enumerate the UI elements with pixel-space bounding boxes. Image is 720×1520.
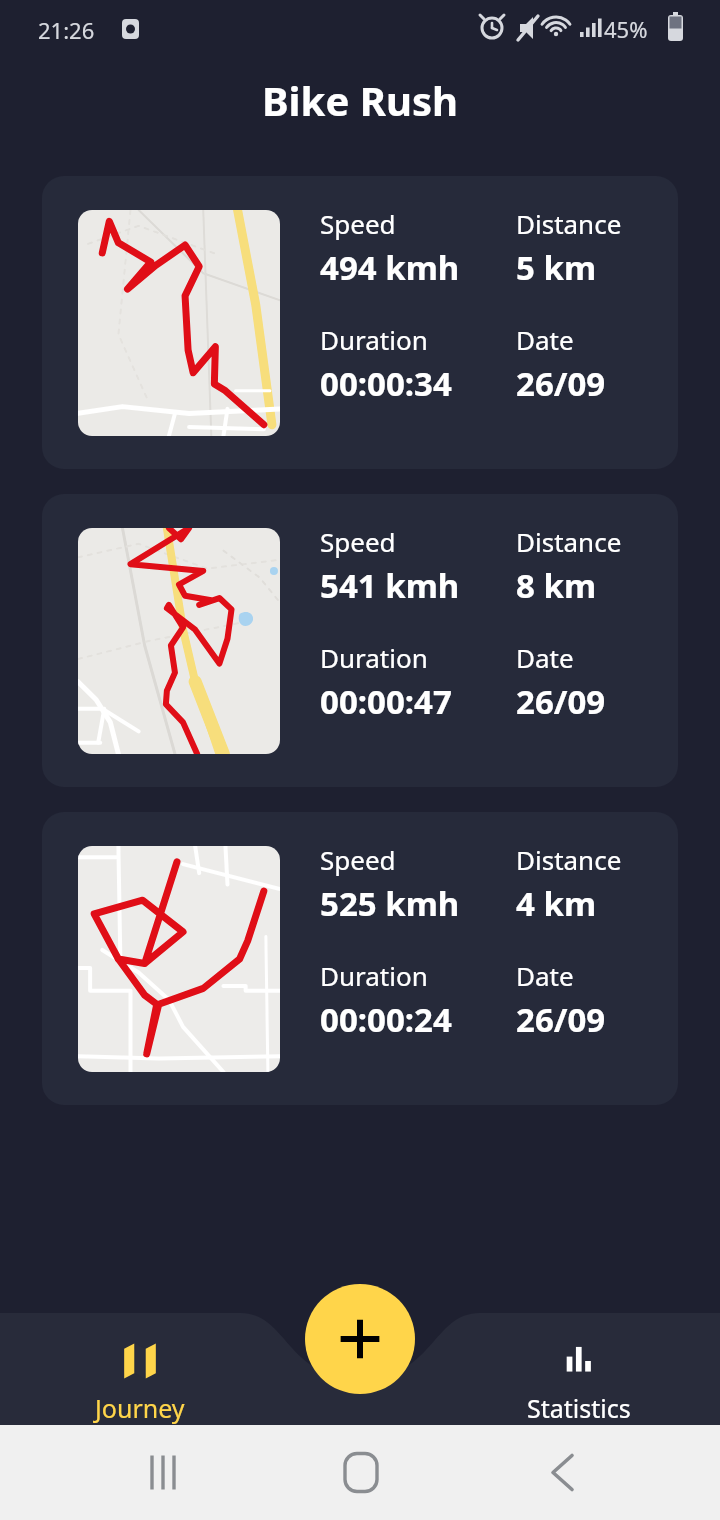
staticText: 541 kmh [320,563,460,608]
button[interactable]: Add journey [305,1284,415,1394]
button[interactable]: Speed [42,494,678,787]
button[interactable]: Journey [60,1339,220,1425]
staticText: Statistics [527,1391,631,1425]
staticText: Date [516,322,574,357]
staticText: Date [516,640,574,675]
staticText: 00:00:34 [320,361,452,406]
staticText: Speed [320,206,396,241]
staticText: Date [516,958,574,993]
staticText: 494 kmh [320,245,460,290]
staticText: 26/09 [516,997,606,1042]
button[interactable]: Statistics [499,1339,659,1425]
staticText: Bike Rush [262,73,458,127]
staticText: Speed [320,842,396,877]
staticText: Duration [320,322,428,357]
staticText: 21:26 [38,15,95,45]
staticText: 26/09 [516,679,606,724]
staticText: Distance [516,842,622,877]
staticText: Speed [320,524,396,559]
staticText: 26/09 [516,361,606,406]
button[interactable]: Speed [42,176,678,469]
staticText: 8 km [516,563,597,608]
staticText: 00:00:24 [320,997,452,1042]
staticText: 00:00:47 [320,679,452,724]
staticText: 45% [604,14,648,44]
staticText: Journey [95,1391,185,1425]
staticText: Distance [516,524,622,559]
staticText: 4 km [516,881,597,926]
button[interactable]: Speed [42,812,678,1105]
staticText: Duration [320,958,428,993]
staticText: Duration [320,640,428,675]
staticText: 5 km [516,245,597,290]
staticText: 525 kmh [320,881,460,926]
staticText: Distance [516,206,622,241]
